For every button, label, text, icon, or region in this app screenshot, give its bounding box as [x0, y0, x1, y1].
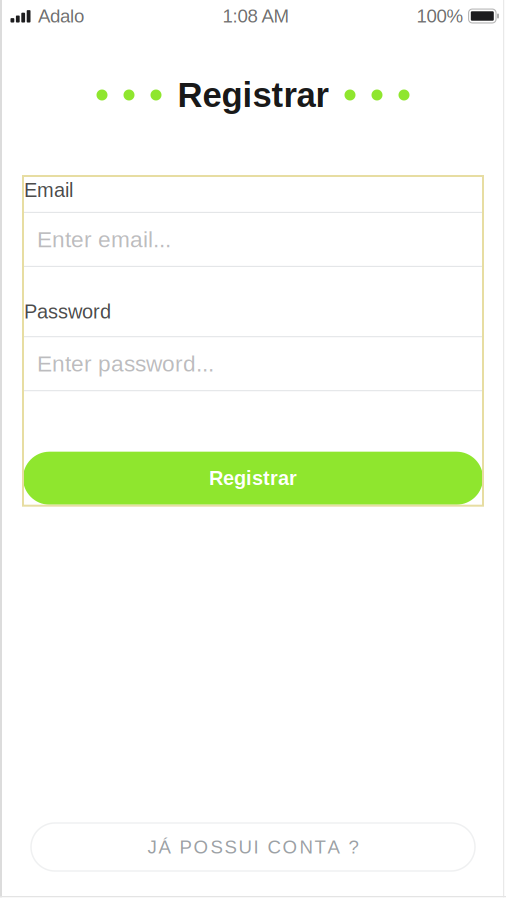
- staticText: Enter email...: [37, 227, 171, 252]
- staticText: 100%: [417, 6, 464, 26]
- staticText: Email: [24, 179, 73, 201]
- staticText: Adalo: [38, 6, 84, 26]
- staticText: Registrar: [177, 76, 328, 114]
- staticText: Enter password...: [37, 351, 214, 376]
- staticText: Password: [24, 300, 111, 323]
- button[interactable]: Registrar: [23, 452, 483, 505]
- button[interactable]: J Á P O S S U I C O N T A ?: [31, 823, 475, 871]
- staticText: 1:08 AM: [222, 6, 289, 26]
- staticText: J Á P O S S U I C O N T A ?: [147, 837, 358, 857]
- staticText: Registrar: [209, 467, 297, 489]
